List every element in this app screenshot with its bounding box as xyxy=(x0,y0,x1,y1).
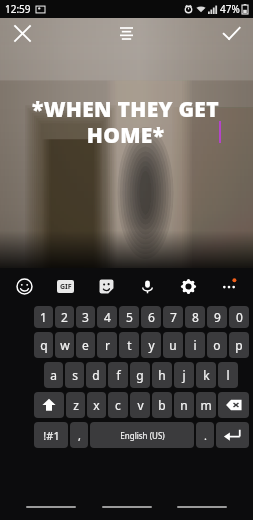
button[interactable]: 9 xyxy=(207,306,227,328)
staticText: 6 xyxy=(148,309,155,325)
staticText: f xyxy=(116,367,121,383)
button[interactable]: q xyxy=(34,332,53,358)
staticText: a xyxy=(50,367,57,383)
staticText: z xyxy=(73,397,79,413)
button[interactable]: i xyxy=(185,332,205,358)
button[interactable]: v xyxy=(130,392,150,418)
button[interactable]: Text alignment xyxy=(104,18,148,48)
button[interactable]: Stickers xyxy=(96,276,116,296)
button[interactable]: e xyxy=(76,332,95,358)
staticText: 47% xyxy=(220,2,240,16)
button[interactable]: Voice input xyxy=(137,276,157,296)
staticText: d xyxy=(92,367,100,383)
staticText: y xyxy=(148,337,155,353)
staticText: 7 xyxy=(170,309,177,325)
button[interactable]: z xyxy=(66,392,85,418)
button[interactable]: Backspace xyxy=(218,392,249,418)
button[interactable]: , xyxy=(70,422,88,448)
button[interactable]: Enter xyxy=(216,422,249,448)
button[interactable]: 0 xyxy=(229,306,249,328)
staticText: !#1 xyxy=(43,428,60,443)
button[interactable]: 2 xyxy=(55,306,74,328)
staticText: *WHEN THEY GET HOME* xyxy=(32,95,219,149)
button[interactable]: s xyxy=(65,362,84,388)
staticText: r xyxy=(105,337,110,353)
staticText: i xyxy=(193,337,197,353)
staticText: h xyxy=(158,367,166,383)
button[interactable]: m xyxy=(196,392,216,418)
button[interactable]: More options xyxy=(219,276,239,296)
button[interactable]: d xyxy=(86,362,106,388)
button[interactable]: Done xyxy=(209,18,253,48)
button[interactable]: 5 xyxy=(119,306,139,328)
button[interactable]: . xyxy=(196,422,214,448)
button[interactable]: Navigation xyxy=(102,506,152,508)
staticText: 2 xyxy=(61,309,68,325)
staticText: k xyxy=(203,367,210,383)
button[interactable]: y xyxy=(141,332,161,358)
button[interactable]: o xyxy=(207,332,227,358)
button[interactable]: a xyxy=(44,362,63,388)
button[interactable]: j xyxy=(174,362,194,388)
staticText: b xyxy=(158,397,166,413)
staticText: s xyxy=(72,367,78,383)
button[interactable]: Navigation xyxy=(26,506,76,508)
button[interactable]: 1 xyxy=(34,306,53,328)
staticText: , xyxy=(78,428,81,443)
staticText: w xyxy=(60,337,70,353)
button[interactable]: u xyxy=(163,332,183,358)
button[interactable]: k xyxy=(196,362,216,388)
staticText: t xyxy=(127,337,132,353)
button[interactable]: b xyxy=(152,392,172,418)
button[interactable]: h xyxy=(152,362,172,388)
button[interactable]: Close xyxy=(0,18,44,48)
staticText: g xyxy=(136,367,144,383)
button[interactable]: Emoji xyxy=(14,276,34,296)
staticText: 0 xyxy=(236,309,243,325)
button[interactable]: 6 xyxy=(141,306,161,328)
staticText: 9 xyxy=(214,309,221,325)
button[interactable]: Navigation xyxy=(177,506,227,508)
staticText: . xyxy=(204,428,207,443)
button[interactable]: 8 xyxy=(185,306,205,328)
staticText: 4 xyxy=(104,309,111,325)
staticText: p xyxy=(235,337,243,353)
staticText: m xyxy=(200,397,212,413)
staticText: 1 xyxy=(40,309,47,325)
staticText: e xyxy=(82,337,89,353)
button[interactable]: Shift xyxy=(34,392,64,418)
staticText: j xyxy=(182,367,186,383)
staticText: l xyxy=(226,367,230,383)
staticText: 12:59 xyxy=(5,2,31,16)
button[interactable]: 7 xyxy=(163,306,183,328)
button[interactable]: l xyxy=(218,362,238,388)
button[interactable]: English (US) xyxy=(90,422,194,448)
staticText: 5 xyxy=(126,309,133,325)
button[interactable]: t xyxy=(119,332,139,358)
staticText: English (US) xyxy=(120,430,165,441)
staticText: u xyxy=(169,337,177,353)
button[interactable]: Settings xyxy=(178,276,198,296)
staticText: c xyxy=(115,397,121,413)
staticText: q xyxy=(40,337,48,353)
button[interactable]: x xyxy=(87,392,106,418)
button[interactable]: g xyxy=(130,362,150,388)
button[interactable]: 3 xyxy=(76,306,95,328)
button[interactable]: n xyxy=(174,392,194,418)
button[interactable]: r xyxy=(97,332,117,358)
staticText: o xyxy=(213,337,221,353)
button[interactable]: 4 xyxy=(97,306,117,328)
button[interactable]: !#1 xyxy=(34,422,68,448)
button[interactable]: p xyxy=(229,332,249,358)
staticText: 3 xyxy=(82,309,89,325)
staticText: v xyxy=(137,397,144,413)
button[interactable]: w xyxy=(55,332,74,358)
staticText: GIF xyxy=(60,282,72,292)
button[interactable]: f xyxy=(108,362,128,388)
button[interactable]: GIF xyxy=(55,276,75,296)
staticText: n xyxy=(180,397,188,413)
button[interactable]: c xyxy=(108,392,128,418)
staticText: 8 xyxy=(192,309,199,325)
staticText: x xyxy=(93,397,100,413)
